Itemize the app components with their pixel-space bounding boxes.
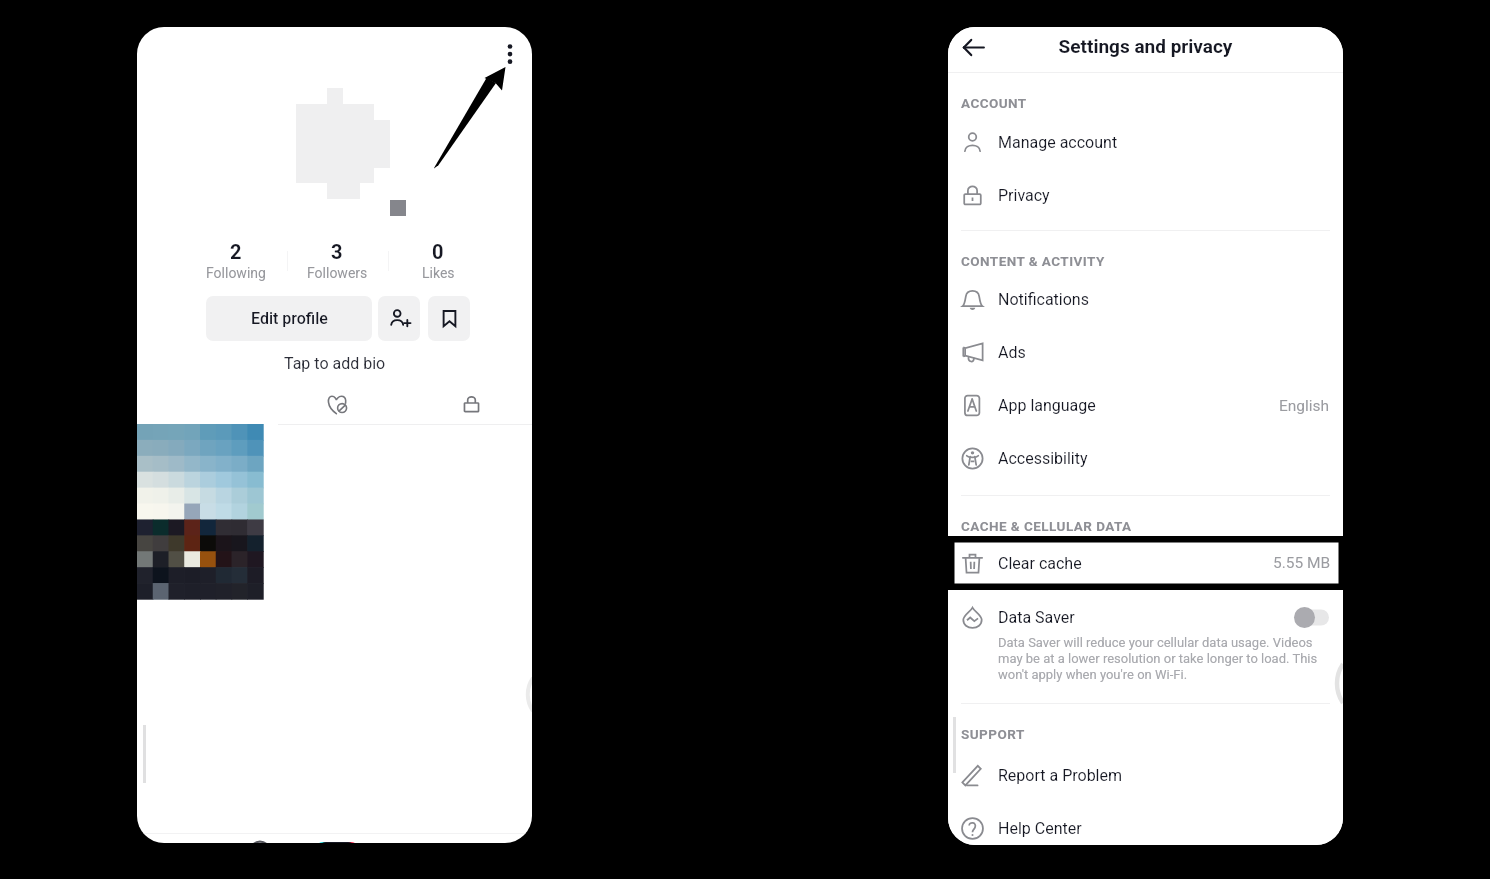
- button[interactable]: Clear cache: [955, 543, 1338, 583]
- button[interactable]: Home: [137, 817, 213, 843]
- button[interactable]: Data Saver toggle: [1294, 607, 1330, 628]
- button[interactable]: Back: [955, 29, 991, 65]
- button[interactable]: Video thumbnail: [137, 424, 263, 599]
- staticText: Ads: [998, 343, 1026, 362]
- staticText: App language: [998, 396, 1096, 415]
- button[interactable]: Add friends: [378, 296, 420, 341]
- button[interactable]: Notifications: [948, 273, 1343, 326]
- button[interactable]: Edit profile: [206, 296, 372, 341]
- button[interactable]: Profile: [456, 817, 532, 843]
- staticText: Following: [206, 265, 266, 281]
- button[interactable]: Bookmarks: [428, 296, 470, 341]
- staticText: Privacy: [998, 186, 1050, 205]
- staticText: Followers: [307, 265, 368, 281]
- staticText: Notifications: [998, 290, 1089, 309]
- staticText: 0: [432, 240, 444, 263]
- staticText: Edit profile: [251, 309, 328, 328]
- staticText: Report a Problem: [998, 766, 1123, 785]
- staticText: Accessibility: [998, 449, 1088, 468]
- button[interactable]: Privacy: [948, 169, 1343, 222]
- staticText: Likes: [422, 265, 455, 281]
- button[interactable]: Private videos: [445, 388, 498, 420]
- button[interactable]: Create: [289, 817, 380, 843]
- button[interactable]: Ads: [948, 326, 1343, 379]
- staticText: ACCOUNT: [961, 95, 1027, 111]
- staticText: Data Saver will reduce your cellular dat…: [998, 635, 1330, 682]
- button[interactable]: More options: [496, 39, 524, 67]
- staticText: CACHE & CELLULAR DATA: [961, 518, 1132, 534]
- staticText: Settings and privacy: [948, 35, 1343, 57]
- staticText: 2: [230, 240, 242, 263]
- staticText: Manage account: [998, 133, 1118, 152]
- button[interactable]: App language: [948, 379, 1343, 432]
- button[interactable]: Manage account: [948, 116, 1343, 169]
- staticText: English: [1279, 397, 1330, 415]
- staticText: CONTENT & ACTIVITY: [961, 253, 1105, 269]
- staticText: SUPPORT: [961, 726, 1025, 742]
- button[interactable]: Accessibility: [948, 432, 1343, 485]
- staticText: Tap to add bio: [284, 354, 386, 373]
- button[interactable]: Report a Problem: [948, 749, 1343, 802]
- button[interactable]: Help Center: [948, 802, 1343, 845]
- button[interactable]: Liked videos: [311, 388, 364, 420]
- button[interactable]: Data Saver: [948, 594, 1343, 640]
- staticText: 3: [331, 240, 343, 263]
- button[interactable]: Discover: [213, 817, 289, 843]
- staticText: Data Saver: [998, 608, 1075, 627]
- staticText: 5.55 MB: [1273, 554, 1331, 572]
- button[interactable]: Tap to add bio: [137, 351, 532, 375]
- staticText: Clear cache: [998, 554, 1082, 573]
- staticText: Help Center: [998, 819, 1082, 838]
